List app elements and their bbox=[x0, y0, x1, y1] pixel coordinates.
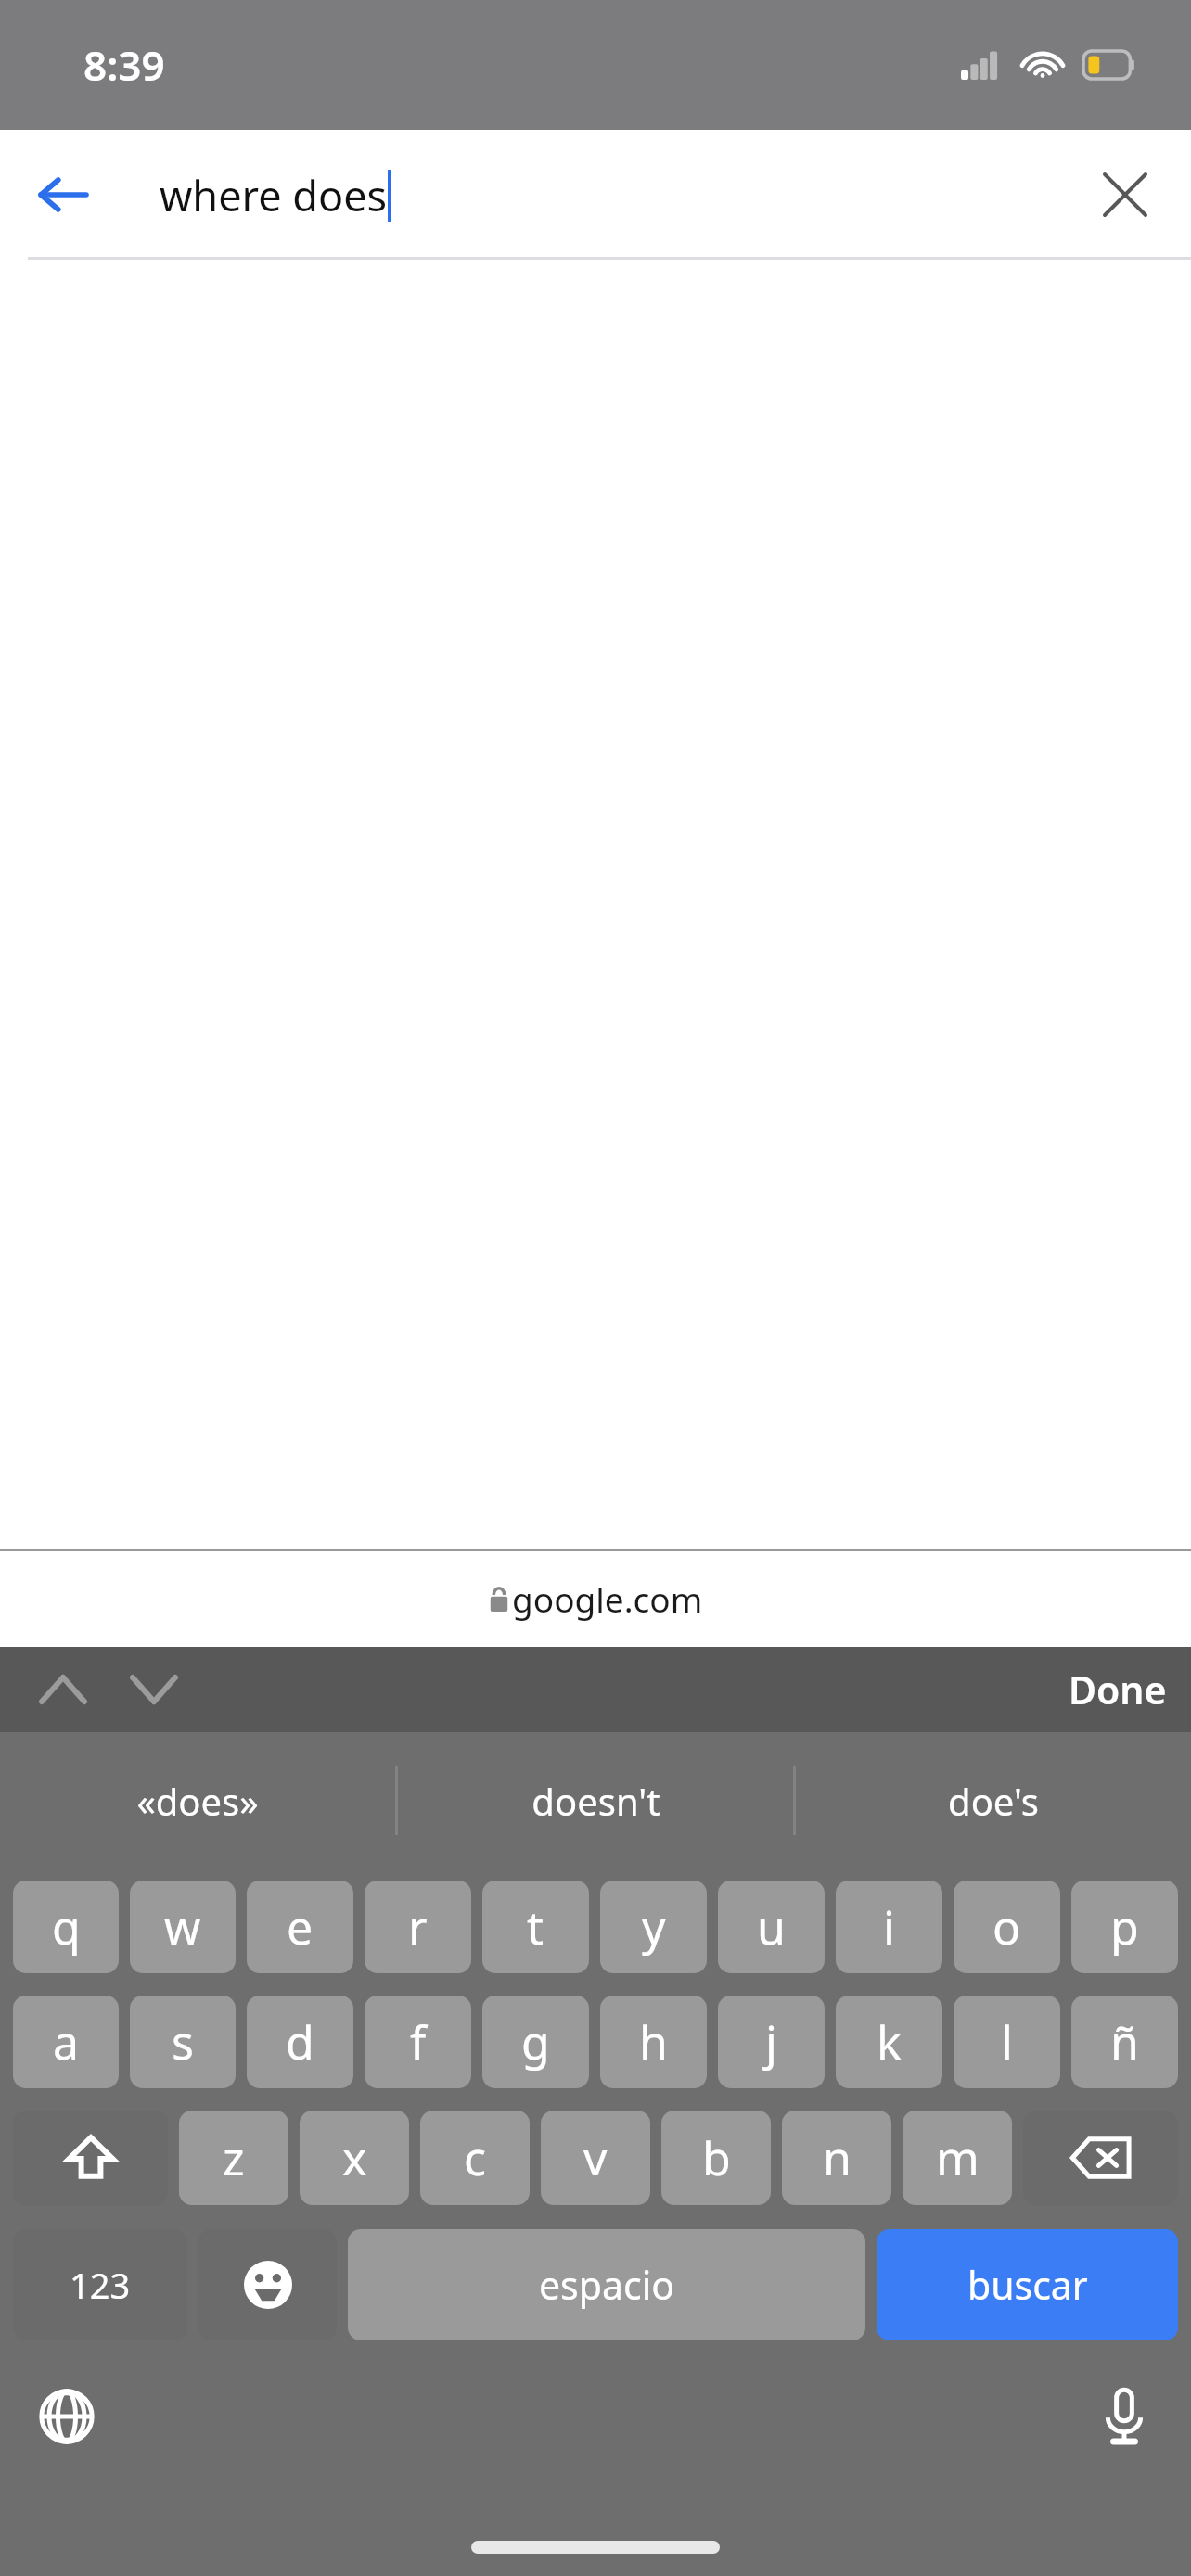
button[interactable]: j bbox=[718, 1996, 825, 2088]
staticText: x bbox=[342, 2126, 367, 2189]
staticText: 123 bbox=[70, 2261, 131, 2309]
button[interactable]: Next field bbox=[119, 1654, 189, 1725]
button[interactable]: «does» bbox=[0, 1732, 395, 1869]
button[interactable]: c bbox=[420, 2111, 530, 2205]
button[interactable]: 123 bbox=[13, 2229, 187, 2340]
staticText: t bbox=[527, 1895, 544, 1958]
button[interactable]: h bbox=[600, 1996, 707, 2088]
staticText: i bbox=[883, 1895, 895, 1958]
button[interactable]: r bbox=[365, 1881, 471, 1973]
staticText: a bbox=[53, 2010, 80, 2073]
button[interactable]: s bbox=[130, 1996, 236, 2088]
button[interactable]: Emoji bbox=[198, 2229, 337, 2340]
button[interactable]: a bbox=[13, 1996, 119, 2088]
staticText: h bbox=[639, 2010, 668, 2073]
staticText: f bbox=[410, 2010, 427, 2073]
staticText: doe's bbox=[948, 1776, 1039, 1826]
button[interactable]: q bbox=[13, 1881, 119, 1973]
staticText: w bbox=[164, 1895, 201, 1958]
button[interactable]: p bbox=[1071, 1881, 1178, 1973]
button[interactable]: Backspace bbox=[1023, 2111, 1178, 2205]
button[interactable]: Shift bbox=[13, 2111, 168, 2205]
button[interactable]: Clear bbox=[1085, 155, 1165, 235]
staticText: c bbox=[464, 2126, 486, 2189]
staticText: d bbox=[286, 2010, 314, 2073]
button[interactable]: buscar bbox=[877, 2229, 1178, 2340]
button[interactable]: doe's bbox=[796, 1732, 1191, 1869]
button[interactable]: b bbox=[661, 2111, 771, 2205]
button[interactable]: g bbox=[482, 1996, 589, 2088]
staticText: y bbox=[642, 1895, 666, 1958]
button[interactable]: n bbox=[782, 2111, 891, 2205]
staticText: v bbox=[583, 2126, 608, 2189]
button[interactable]: l bbox=[954, 1996, 1060, 2088]
staticText: z bbox=[223, 2126, 245, 2189]
button[interactable]: Done bbox=[1069, 1664, 1167, 1715]
staticText: google.com bbox=[512, 1575, 703, 1622]
button[interactable]: Dictate bbox=[1080, 2372, 1169, 2461]
button[interactable]: espacio bbox=[348, 2229, 865, 2340]
button[interactable]: e bbox=[247, 1881, 353, 1973]
button[interactable]: Back bbox=[22, 155, 102, 235]
button[interactable]: m bbox=[903, 2111, 1012, 2205]
staticText: b bbox=[702, 2126, 731, 2189]
button[interactable]: i bbox=[836, 1881, 942, 1973]
button[interactable]: t bbox=[482, 1881, 589, 1973]
staticText: l bbox=[1001, 2010, 1013, 2073]
staticText: j bbox=[765, 2010, 777, 2073]
staticText: g bbox=[521, 2010, 550, 2073]
button[interactable]: o bbox=[954, 1881, 1060, 1973]
staticText: Done bbox=[1069, 1664, 1167, 1715]
button[interactable]: x bbox=[300, 2111, 409, 2205]
staticText: o bbox=[992, 1895, 1021, 1958]
button[interactable]: w bbox=[130, 1881, 236, 1973]
staticText: «does» bbox=[136, 1776, 259, 1826]
staticText: where does bbox=[160, 167, 388, 223]
button[interactable]: f bbox=[365, 1996, 471, 2088]
staticText: s bbox=[172, 2010, 194, 2073]
staticText: doesn't bbox=[531, 1776, 660, 1826]
button[interactable]: k bbox=[836, 1996, 942, 2088]
staticText: q bbox=[52, 1895, 81, 1958]
button[interactable]: Change keyboard language bbox=[22, 2372, 111, 2461]
button[interactable]: y bbox=[600, 1881, 707, 1973]
staticText: buscar bbox=[967, 2259, 1088, 2311]
staticText: espacio bbox=[539, 2259, 675, 2311]
staticText: p bbox=[1110, 1895, 1139, 1958]
button[interactable]: doesn't bbox=[398, 1732, 793, 1869]
staticText: e bbox=[287, 1895, 314, 1958]
staticText: u bbox=[757, 1895, 786, 1958]
staticText: 8:39 bbox=[83, 37, 165, 93]
staticText: ñ bbox=[1110, 2010, 1139, 2073]
staticText: n bbox=[823, 2126, 852, 2189]
button[interactable]: Previous field bbox=[28, 1654, 98, 1725]
button[interactable]: d bbox=[247, 1996, 353, 2088]
staticText: m bbox=[936, 2126, 980, 2189]
button[interactable]: u bbox=[718, 1881, 825, 1973]
staticText: k bbox=[877, 2010, 902, 2073]
staticText: r bbox=[408, 1895, 428, 1958]
button[interactable]: z bbox=[179, 2111, 288, 2205]
button[interactable]: ñ bbox=[1071, 1996, 1178, 2088]
button[interactable]: v bbox=[541, 2111, 650, 2205]
